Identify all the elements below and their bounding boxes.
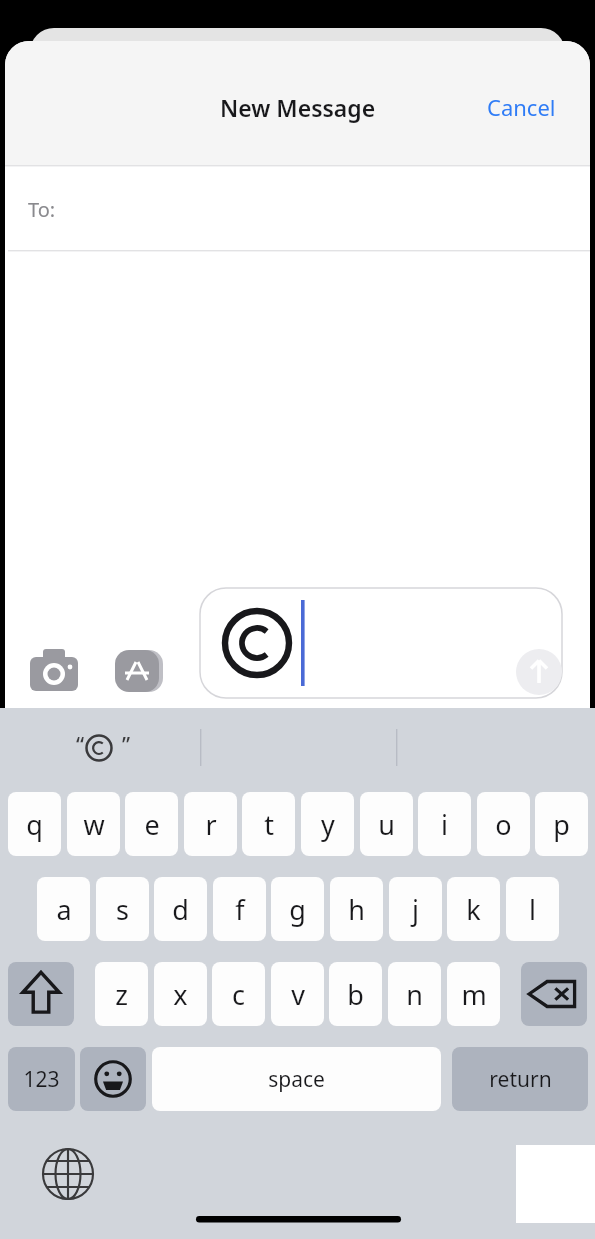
button[interactable]: c (212, 962, 265, 1026)
button[interactable]: l (506, 877, 559, 941)
button[interactable]: 123 (8, 1047, 75, 1111)
staticText: ” (122, 731, 131, 760)
staticText: d (172, 891, 189, 928)
button[interactable]: w (67, 792, 120, 856)
button[interactable]: Delete (521, 962, 587, 1026)
button[interactable]: Emoji (80, 1047, 146, 1111)
button[interactable]: t (242, 792, 295, 856)
staticText: k (466, 891, 481, 928)
button[interactable]: b (329, 962, 382, 1026)
staticText: c (232, 976, 245, 1013)
staticText: space (268, 1065, 325, 1094)
staticText: f (235, 891, 245, 928)
staticText: h (348, 891, 365, 928)
button[interactable]: s (96, 877, 149, 941)
button[interactable]: Shift (8, 962, 74, 1026)
staticText: a (56, 891, 72, 928)
button[interactable]: x (154, 962, 207, 1026)
button[interactable]: Change keyboard (43, 1149, 93, 1199)
button[interactable]: n (388, 962, 441, 1026)
button[interactable]: space (152, 1047, 441, 1111)
button[interactable]: f (213, 877, 266, 941)
button[interactable]: u (360, 792, 413, 856)
staticText: i (441, 806, 448, 843)
staticText: y (321, 806, 335, 843)
staticText: v (291, 976, 305, 1013)
staticText: return (489, 1065, 552, 1094)
button[interactable]: o (477, 792, 530, 856)
staticText: Cancel (487, 92, 556, 122)
staticText: l (529, 891, 536, 928)
staticText: g (289, 891, 306, 928)
staticText: p (553, 806, 570, 843)
staticText: r (205, 806, 217, 843)
button[interactable]: i (418, 792, 471, 856)
button[interactable]: v (271, 962, 324, 1026)
button[interactable]: d (154, 877, 207, 941)
staticText: q (26, 806, 43, 843)
staticText: 123 (23, 1065, 60, 1094)
button[interactable]: m (447, 962, 500, 1026)
staticText: b (347, 976, 364, 1013)
button[interactable]: p (535, 792, 588, 856)
staticText: n (406, 976, 423, 1013)
staticText: “ (76, 731, 85, 760)
button[interactable]: q (8, 792, 61, 856)
staticText: To: (28, 196, 56, 223)
staticText: u (378, 806, 395, 843)
button[interactable]: j (389, 877, 442, 941)
button[interactable]: h (330, 877, 383, 941)
button[interactable]: g (271, 877, 324, 941)
staticText: w (83, 806, 105, 843)
button[interactable]: k (447, 877, 500, 941)
button[interactable]: r (184, 792, 237, 856)
staticText: m (461, 976, 487, 1013)
button[interactable]: Copyright suggestion (68, 726, 134, 768)
button[interactable]: y (301, 792, 354, 856)
staticText: New Message (220, 92, 376, 123)
staticText: x (173, 976, 188, 1013)
button[interactable]: e (125, 792, 178, 856)
staticText: j (412, 891, 419, 928)
button[interactable]: z (95, 962, 148, 1026)
button[interactable]: Cancel (466, 84, 576, 130)
button[interactable]: return (452, 1047, 588, 1111)
staticText: e (144, 806, 160, 843)
staticText: z (115, 976, 128, 1013)
staticText: t (264, 806, 274, 843)
staticText: o (495, 806, 512, 843)
staticText: s (116, 891, 129, 928)
button[interactable]: a (37, 877, 90, 941)
